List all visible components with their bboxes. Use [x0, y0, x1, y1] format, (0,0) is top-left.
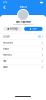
button[interactable]: About: [0, 64, 46, 70]
staticText: Privacy: [3, 48, 9, 50]
button[interactable]: Back: [2, 5, 7, 10]
staticText: Notifications: [3, 42, 13, 44]
staticText: Jane Appleseed: [15, 21, 30, 23]
button[interactable]: Message: [3, 27, 22, 31]
button[interactable]: Notifications: [0, 40, 46, 46]
staticText: Message: [10, 28, 18, 30]
staticText: Help: [3, 60, 6, 62]
button[interactable]: Payments: [0, 52, 46, 58]
button[interactable]: Account: [0, 34, 46, 40]
staticText: Profile: [19, 6, 26, 9]
staticText: Payments: [3, 54, 12, 56]
staticText: Account: [3, 36, 10, 38]
staticText: Follow: [32, 28, 37, 30]
button[interactable]: Help: [0, 58, 46, 64]
staticText: jane.appleseed@icloud.com: [13, 23, 32, 25]
button[interactable]: Privacy: [0, 46, 46, 52]
staticText: About: [3, 66, 8, 68]
staticText: Edit: [38, 36, 41, 38]
button[interactable]: Follow: [24, 27, 43, 31]
staticText: 9:41: [3, 1, 7, 4]
